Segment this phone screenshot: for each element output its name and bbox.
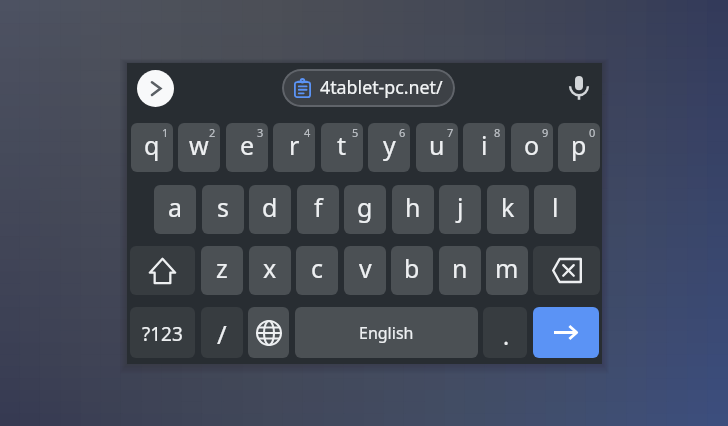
button[interactable]: l xyxy=(534,185,576,234)
staticText: 4 xyxy=(304,125,311,140)
staticText: 4tablet-pc.net/ xyxy=(320,75,443,99)
button[interactable]: Enter xyxy=(533,307,599,358)
staticText: 1 xyxy=(162,125,169,140)
button[interactable]: j xyxy=(439,185,481,234)
button[interactable]: w xyxy=(178,123,220,172)
staticText: s xyxy=(217,190,229,224)
staticText: f xyxy=(314,190,323,224)
staticText: z xyxy=(216,251,228,285)
staticText: w xyxy=(189,128,209,162)
button[interactable]: p xyxy=(558,123,600,172)
button[interactable]: / xyxy=(201,307,243,358)
button[interactable]: h xyxy=(392,185,434,234)
button[interactable]: q xyxy=(131,123,173,172)
staticText: y xyxy=(383,128,396,162)
staticText: d xyxy=(262,190,278,224)
staticText: o xyxy=(524,128,540,162)
button[interactable]: i xyxy=(463,123,505,172)
staticText: l xyxy=(552,190,559,224)
button[interactable]: v xyxy=(344,246,386,295)
button[interactable]: t xyxy=(321,123,363,172)
button[interactable]: ?123 xyxy=(130,307,195,358)
button[interactable]: s xyxy=(202,185,244,234)
button[interactable]: y xyxy=(368,123,410,172)
staticText: p xyxy=(571,128,587,162)
staticText: j xyxy=(457,190,464,224)
staticText: / xyxy=(217,316,227,351)
button[interactable]: English xyxy=(295,307,478,358)
staticText: . xyxy=(503,320,510,351)
button[interactable]: Shift xyxy=(130,246,195,295)
button[interactable]: d xyxy=(249,185,291,234)
button[interactable]: f xyxy=(297,185,339,234)
staticText: a xyxy=(168,190,183,224)
staticText: e xyxy=(240,128,255,162)
staticText: 5 xyxy=(352,125,359,140)
button[interactable]: b xyxy=(391,246,433,295)
staticText: English xyxy=(359,322,414,344)
button[interactable]: . xyxy=(483,307,527,358)
staticText: v xyxy=(359,251,372,285)
staticText: n xyxy=(452,251,468,285)
button[interactable]: e xyxy=(226,123,268,172)
button[interactable]: u xyxy=(416,123,458,172)
staticText: 7 xyxy=(447,125,454,140)
button[interactable]: x xyxy=(249,246,291,295)
button[interactable]: o xyxy=(511,123,553,172)
staticText: 2 xyxy=(209,125,216,140)
staticText: i xyxy=(481,128,488,162)
button[interactable]: k xyxy=(487,185,529,234)
staticText: r xyxy=(289,128,300,162)
staticText: m xyxy=(495,251,519,285)
staticText: q xyxy=(144,128,160,162)
staticText: 0 xyxy=(589,125,596,140)
button[interactable]: m xyxy=(486,246,528,295)
staticText: 8 xyxy=(494,125,501,140)
button[interactable]: c xyxy=(296,246,338,295)
button[interactable]: r xyxy=(273,123,315,172)
staticText: b xyxy=(404,251,420,285)
button[interactable]: a xyxy=(154,185,196,234)
button[interactable]: Forward xyxy=(137,70,174,107)
staticText: 6 xyxy=(399,125,406,140)
staticText: x xyxy=(263,251,277,285)
staticText: k xyxy=(501,190,515,224)
staticText: 9 xyxy=(542,125,549,140)
button[interactable]: Change language xyxy=(248,307,289,358)
button[interactable]: 4tablet-pc.net/ xyxy=(282,69,455,107)
staticText: t xyxy=(337,128,347,162)
staticText: h xyxy=(405,190,421,224)
staticText: g xyxy=(357,190,373,224)
staticText: u xyxy=(429,128,445,162)
button[interactable]: z xyxy=(201,246,243,295)
staticText: c xyxy=(311,251,324,285)
button[interactable]: Voice search xyxy=(565,74,593,102)
staticText: ?123 xyxy=(142,321,183,347)
button[interactable]: Backspace xyxy=(533,246,600,295)
staticText: 3 xyxy=(257,125,264,140)
button[interactable]: n xyxy=(439,246,481,295)
button[interactable]: g xyxy=(344,185,386,234)
